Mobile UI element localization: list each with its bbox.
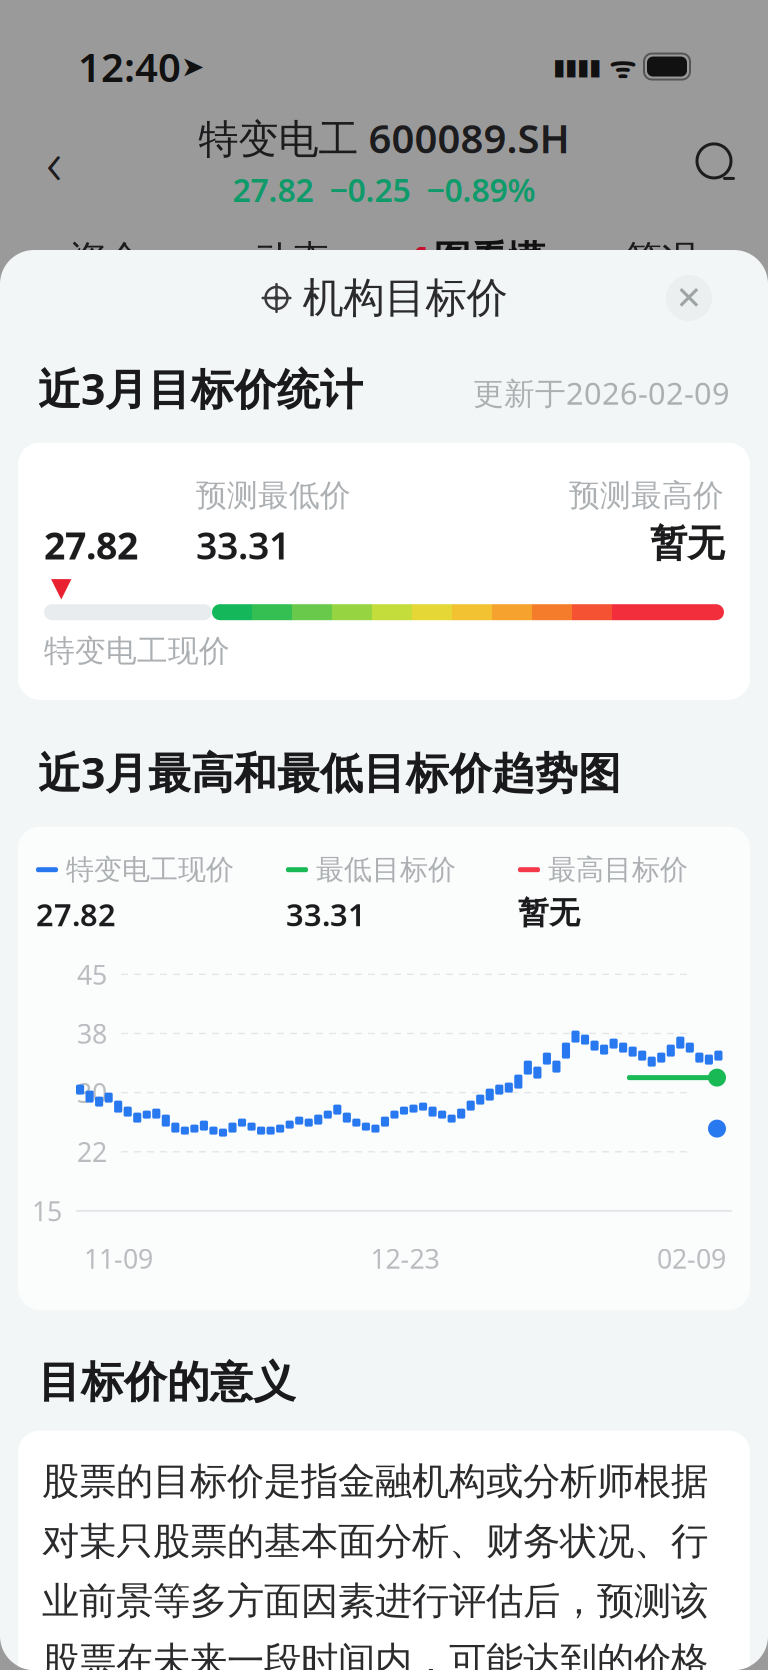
staticText: 33.31 <box>196 520 290 570</box>
button[interactable]: Close <box>666 275 712 321</box>
staticText: 股票的目标价是指金融机构或分析师根据对某只股票的基本面分析、财务状况、行业前景等… <box>42 1458 708 1670</box>
staticText: 12:40 <box>78 40 181 93</box>
staticText: 02-09 <box>657 1241 726 1276</box>
staticText: 15 <box>32 1193 62 1229</box>
staticText: 机构目标价 <box>302 273 507 323</box>
staticText: 11-09 <box>84 1241 153 1276</box>
staticText: 30 <box>77 1075 107 1110</box>
staticText: 12-23 <box>370 1241 439 1276</box>
button[interactable]: Back <box>22 129 86 193</box>
staticText: 目标价的意义 <box>38 1356 296 1408</box>
staticText: 最高目标价 <box>548 852 688 887</box>
staticText: 27.82 −0.25 −0.89% <box>232 168 535 211</box>
staticText: 22 <box>77 1134 107 1169</box>
staticText: 更新于2026-02-09 <box>473 372 730 413</box>
staticText: ▮▮▮▮ <box>553 54 601 79</box>
staticText: 特变电工 600089.SH <box>198 111 569 164</box>
staticText: 最低目标价 <box>316 852 456 887</box>
staticText: ▼ <box>51 572 72 602</box>
staticText: 图看懂 <box>433 237 544 282</box>
staticText: 38 <box>77 1016 107 1051</box>
staticText: 27.82 <box>36 894 116 935</box>
staticText: 近3月目标价统计 <box>38 360 363 417</box>
staticText: 33.31 <box>286 894 366 935</box>
staticText: 1 <box>408 235 430 284</box>
staticText: ✕ <box>675 280 702 316</box>
staticText: 动态 <box>254 237 328 282</box>
staticText: 简况 <box>624 237 698 282</box>
staticText: ᯤ <box>601 47 644 86</box>
staticText: ➤ <box>181 51 204 82</box>
staticText: 预测最高价 <box>569 477 724 514</box>
staticText: 特变电工现价 <box>44 632 230 670</box>
staticText: 暂无 <box>518 894 580 932</box>
button[interactable]: Search <box>682 129 746 193</box>
staticText: ‹ <box>46 120 62 202</box>
staticText: 近3月最高和最低目标价趋势图 <box>38 744 621 800</box>
staticText: 45 <box>77 957 107 992</box>
staticText: 暂无 <box>650 520 724 566</box>
staticText: 特变电工现价 <box>66 852 234 887</box>
staticText: 资金 <box>69 237 143 282</box>
staticText: 27.82 <box>44 520 138 570</box>
staticText: 预测最低价 <box>196 477 351 514</box>
